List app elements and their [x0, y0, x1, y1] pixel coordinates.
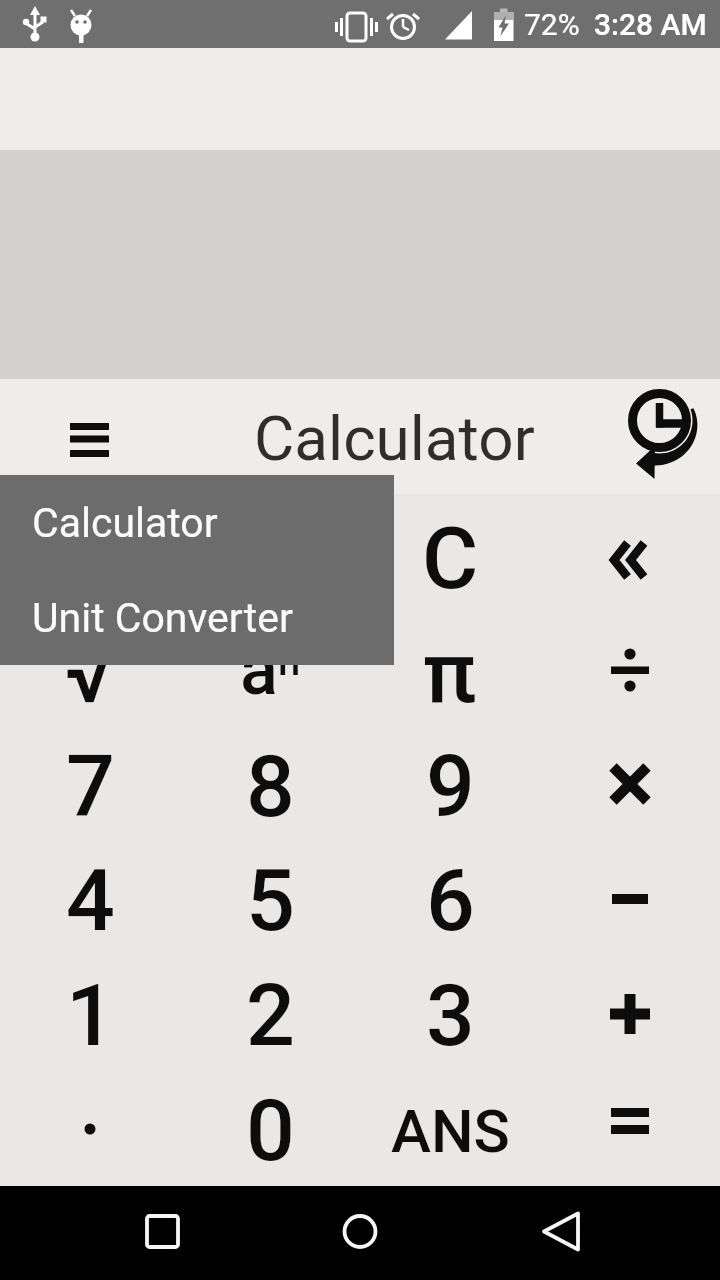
button[interactable] — [62, 415, 118, 471]
staticText: ANS — [391, 1096, 510, 1166]
staticText: 72% — [524, 7, 580, 42]
button[interactable]: 1 — [0, 956, 180, 1071]
staticText: an — [240, 629, 301, 711]
button[interactable]: 9 — [360, 727, 540, 841]
button[interactable] — [540, 613, 720, 727]
staticText: 8 — [246, 736, 295, 837]
staticText: Calculator — [32, 499, 218, 547]
staticText: 2 — [246, 965, 295, 1066]
staticText: 4 — [66, 850, 115, 951]
button[interactable] — [540, 727, 720, 841]
staticText: 0 — [246, 1080, 295, 1181]
button[interactable]: C — [360, 499, 540, 613]
staticText: Unit Converter — [32, 594, 293, 642]
button[interactable]: 3 — [360, 956, 540, 1071]
staticText: 9 — [426, 736, 475, 837]
button[interactable]: an — [180, 613, 360, 727]
button[interactable] — [530, 1201, 590, 1261]
button[interactable] — [610, 379, 710, 489]
button[interactable] — [540, 841, 720, 956]
button[interactable]: Unit Converter — [0, 570, 394, 665]
button[interactable]: 4 — [0, 841, 180, 956]
staticText: 3 — [426, 965, 475, 1066]
staticText: π — [423, 622, 477, 723]
staticText: 7 — [66, 736, 115, 837]
button[interactable] — [0, 499, 180, 613]
button[interactable]: 0 — [180, 1071, 360, 1186]
button[interactable] — [540, 499, 720, 613]
button[interactable] — [540, 956, 720, 1071]
button[interactable] — [180, 499, 360, 613]
button[interactable] — [330, 1201, 390, 1261]
button[interactable] — [540, 1071, 720, 1186]
staticText: 3:28 AM — [594, 7, 707, 42]
button[interactable] — [0, 1071, 180, 1186]
staticText: 6 — [426, 850, 475, 951]
button[interactable] — [132, 1201, 192, 1261]
button[interactable]: 7 — [0, 727, 180, 841]
button[interactable]: √ — [0, 613, 180, 727]
button[interactable]: 2 — [180, 956, 360, 1071]
staticText: 5 — [246, 850, 295, 951]
button[interactable]: π — [360, 613, 540, 727]
button[interactable]: Calculator — [0, 475, 394, 570]
staticText: Calculator — [254, 402, 535, 475]
staticText: C — [422, 508, 479, 609]
button[interactable]: 5 — [180, 841, 360, 956]
staticText: √ — [65, 622, 116, 723]
button[interactable]: 6 — [360, 841, 540, 956]
button[interactable]: ANS — [360, 1071, 540, 1186]
button[interactable]: 8 — [180, 727, 360, 841]
staticText: 1 — [66, 965, 115, 1066]
